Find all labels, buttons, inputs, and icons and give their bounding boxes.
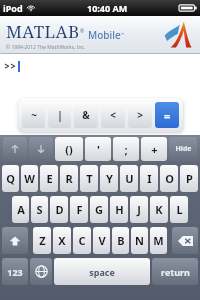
staticText: + [151,142,158,157]
staticText: 123 [7,266,23,278]
staticText: P [186,171,193,186]
staticText: Q [6,171,15,186]
staticText: ™ [121,32,125,37]
staticText: N [135,233,144,248]
staticText: | [57,108,63,122]
staticText: O [165,171,174,186]
button[interactable]: I [140,165,158,192]
button[interactable]: L [170,196,188,223]
button[interactable]: H [110,196,128,223]
button[interactable]: 123 [2,258,28,285]
button[interactable]: U [120,165,138,192]
button[interactable]: Backspace [172,227,198,254]
staticText: E [46,171,53,186]
button[interactable]: ~ [22,102,45,128]
button[interactable]: C [73,227,91,254]
staticText: MATLAB [6,20,80,43]
staticText: V [98,233,106,248]
button[interactable]: X [53,227,71,254]
button[interactable]: W [21,165,38,192]
staticText: Z [39,233,46,248]
button[interactable]: ' [85,137,111,161]
button[interactable]: Q [2,165,19,192]
button[interactable]: > [128,102,152,128]
staticText: () [65,142,73,157]
button[interactable]: S [31,196,48,223]
staticText: 10:40 AM [87,2,128,14]
button[interactable]: D [50,196,68,223]
staticText: B [117,233,125,248]
button[interactable]: () [55,137,83,161]
staticText: Mobile [88,28,121,42]
button[interactable]: R [60,165,78,192]
staticText: > [137,108,143,122]
staticText: A [17,202,25,217]
staticText: iPod [3,2,23,14]
button[interactable]: space [54,258,150,285]
button[interactable]: T [80,165,98,192]
staticText: J [137,202,141,217]
button[interactable]: K [150,196,168,223]
button[interactable]: ; [113,137,139,161]
staticText: © 1984-2012 The MathWorks, Inc. [6,44,86,51]
staticText: F [76,202,83,217]
staticText: H [115,202,124,217]
staticText: D [55,202,64,217]
button[interactable]: F [70,196,88,223]
staticText: W [24,171,35,186]
staticText: M [153,233,164,248]
button[interactable]: A [12,196,29,223]
button[interactable]: = [155,102,179,128]
staticText: C [78,233,86,248]
button[interactable]: M [150,227,167,254]
button[interactable]: Down [29,137,53,161]
button[interactable]: E [40,165,58,192]
staticText: = [164,108,171,123]
staticText: X [58,233,66,248]
button[interactable]: Up [3,137,27,161]
staticText: L [176,202,183,217]
staticText: T [86,171,93,186]
staticText: Hide [175,144,192,154]
staticText: < [110,108,116,122]
staticText: Y [106,171,113,186]
button[interactable]: J [130,196,148,223]
button[interactable]: & [74,102,98,128]
staticText: space [89,266,115,278]
button[interactable]: Y [100,165,118,192]
staticText: I [147,171,152,186]
button[interactable]: Shift [2,227,28,254]
staticText: return [161,266,190,278]
button[interactable]: B [112,227,129,254]
staticText: >> [4,59,16,73]
button[interactable]: G [90,196,108,223]
staticText: S [36,202,43,217]
button[interactable]: + [141,137,167,161]
staticText: ' [97,142,100,157]
button[interactable]: P [180,165,198,192]
staticText: ® [80,28,85,35]
button[interactable]: < [101,102,125,128]
button[interactable]: O [160,165,178,192]
staticText: & [82,108,90,122]
staticText: ; [124,142,128,157]
button[interactable]: Hide [169,137,197,161]
staticText: G [95,202,103,217]
staticText: K [155,202,163,217]
button[interactable]: return [152,258,198,285]
button[interactable]: N [131,227,148,254]
button[interactable]: V [93,227,110,254]
button[interactable]: Change keyboard [30,258,52,285]
staticText: U [125,171,134,186]
staticText: ~ [31,108,37,122]
button[interactable]: Z [33,227,51,254]
staticText: R [65,171,73,186]
button[interactable]: | [48,102,71,128]
